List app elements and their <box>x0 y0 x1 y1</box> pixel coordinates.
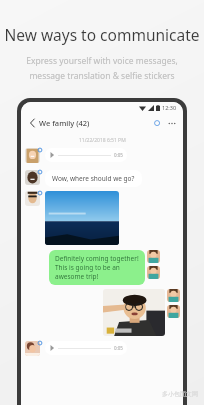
button[interactable]: Search <box>151 117 163 129</box>
staticText: message translation & selfie stickers <box>29 70 175 82</box>
button[interactable]: Read receipt avatar <box>167 305 180 318</box>
button[interactable]: Definitely coming together! <box>49 250 145 285</box>
staticText: 12:30 <box>162 104 177 111</box>
staticText: 多小包面文网 <box>162 390 198 398</box>
button[interactable]: Contact avatar <box>25 148 40 163</box>
staticText: 0:05 <box>114 345 123 351</box>
button[interactable]: Contact avatar <box>25 341 40 356</box>
button[interactable]: Contact avatar <box>25 170 40 185</box>
button[interactable]: Wow, where should we go? <box>45 170 142 187</box>
staticText: This is going to be an <box>55 263 120 272</box>
button[interactable]: Back <box>26 117 38 129</box>
button[interactable]: Shared photo <box>45 191 119 245</box>
button[interactable]: Contact avatar <box>25 191 40 206</box>
button[interactable]: Read receipt avatar <box>147 266 160 279</box>
staticText: Express yourself with voice messages, <box>26 55 178 67</box>
staticText: 11/22/2018 6:51 PM <box>79 137 126 144</box>
button[interactable]: Play voice message <box>45 341 127 355</box>
button[interactable]: Read receipt avatar <box>147 250 160 263</box>
staticText: New ways to communicate <box>4 24 200 45</box>
staticText: awesome trip! <box>55 272 99 281</box>
button[interactable]: Read receipt avatar <box>167 289 180 302</box>
staticText: 0:05 <box>114 152 123 158</box>
button[interactable]: Selfie video message <box>103 289 165 336</box>
button[interactable]: More options <box>166 117 178 129</box>
button[interactable]: Play voice message <box>45 148 127 162</box>
staticText: Definitely coming together! <box>55 254 139 263</box>
staticText: Wow, where should we go? <box>52 174 135 183</box>
staticText: We family (42) <box>39 118 90 128</box>
